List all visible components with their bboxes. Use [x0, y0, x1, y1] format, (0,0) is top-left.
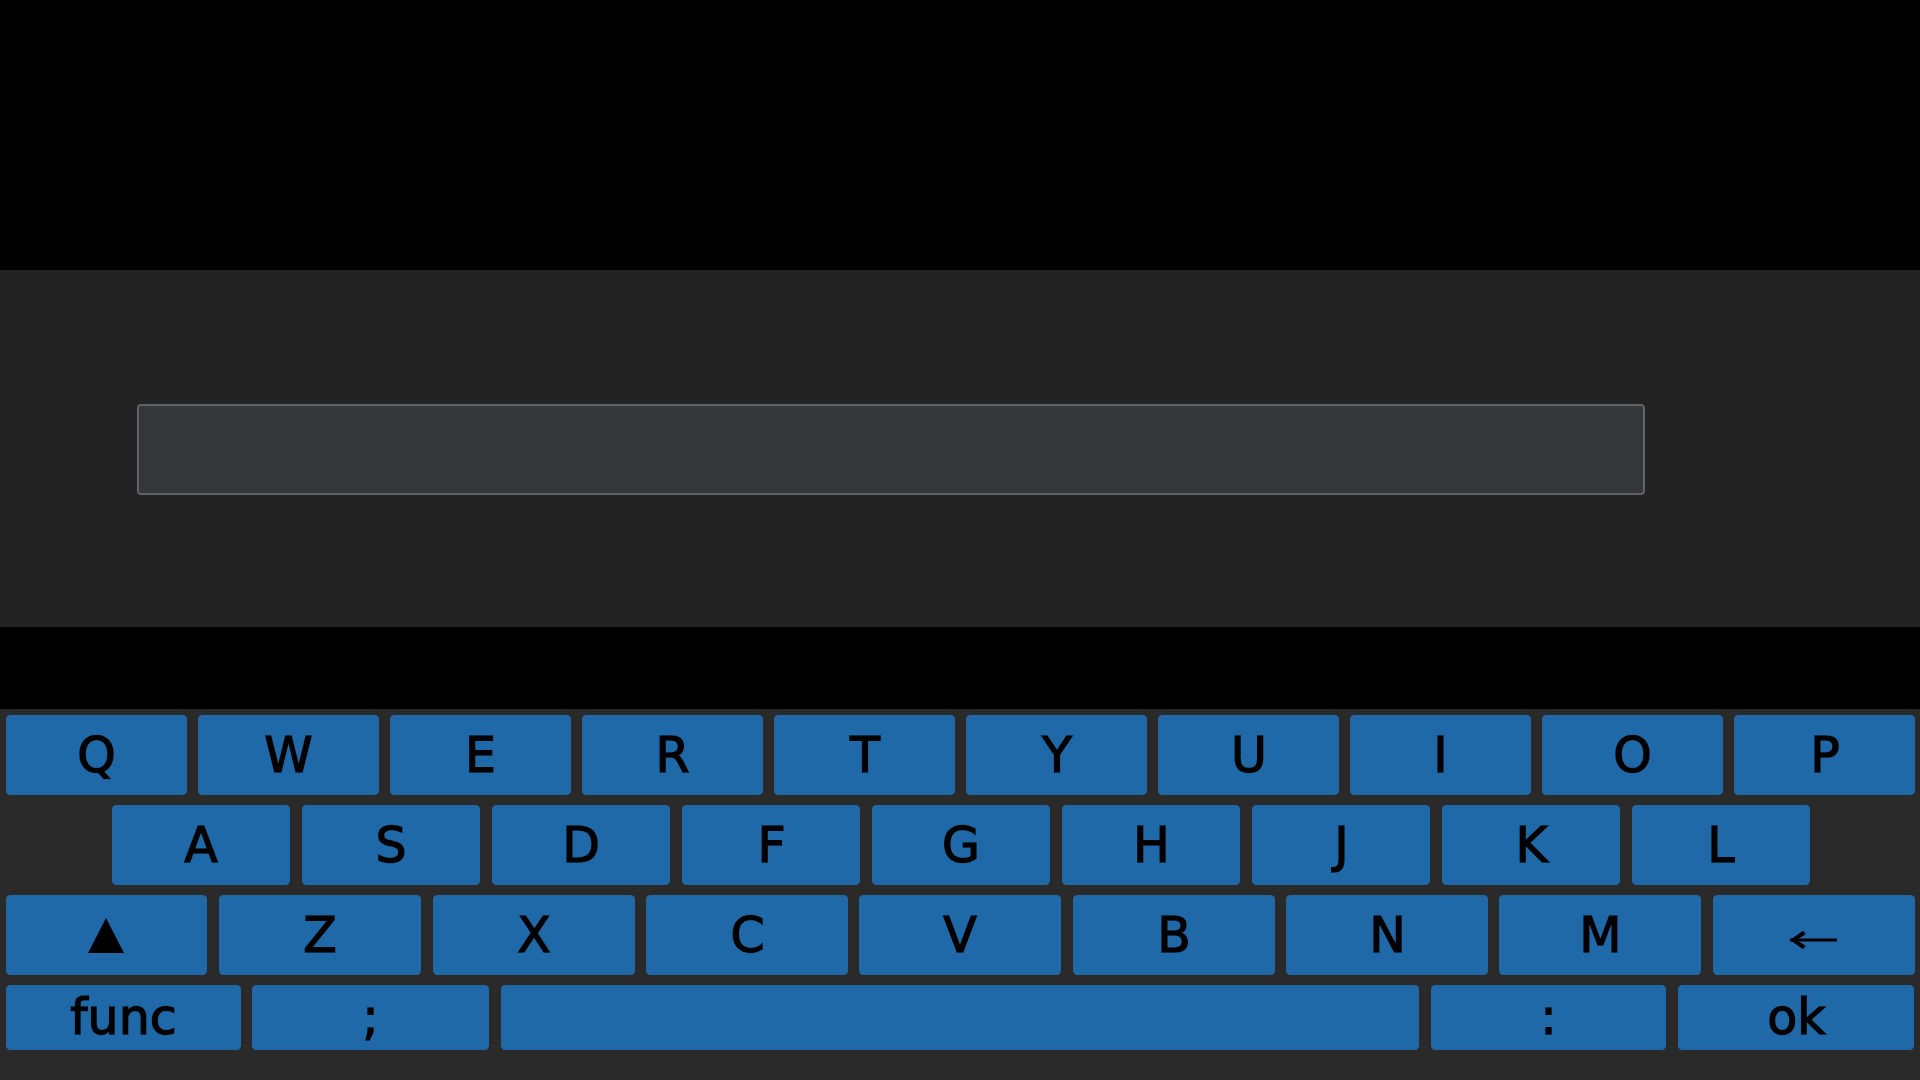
staticText: D [562, 817, 600, 874]
button[interactable]: ok [1678, 985, 1914, 1050]
button[interactable]: ; [252, 985, 489, 1050]
staticText: V [943, 907, 977, 964]
button[interactable]: W [198, 715, 379, 795]
staticText: I [1433, 727, 1448, 784]
button[interactable]: T [774, 715, 955, 795]
button[interactable]: I [1350, 715, 1531, 795]
staticText: R [655, 727, 690, 784]
button[interactable]: R [582, 715, 763, 795]
staticText: H [1133, 817, 1170, 874]
staticText: Y [1042, 727, 1072, 784]
staticText: N [1369, 907, 1406, 964]
button[interactable]: L [1632, 805, 1810, 885]
staticText: T [850, 727, 880, 784]
staticText: J [1334, 817, 1349, 874]
button[interactable]: G [872, 805, 1050, 885]
staticText: ; [362, 989, 379, 1046]
button[interactable]: : [1431, 985, 1666, 1050]
button[interactable]: S [302, 805, 480, 885]
button[interactable]: V [859, 895, 1061, 975]
staticText: Z [303, 907, 337, 964]
button[interactable]: Q [6, 715, 187, 795]
button[interactable]: X [433, 895, 635, 975]
button[interactable]: func [6, 985, 241, 1050]
button[interactable]: Backspace [1713, 895, 1915, 975]
button[interactable]: M [1499, 895, 1701, 975]
staticText: W [264, 727, 313, 784]
button[interactable]: C [646, 895, 848, 975]
staticText: : [1540, 989, 1557, 1046]
staticText: M [1579, 907, 1622, 964]
staticText: S [375, 817, 407, 874]
button[interactable] [137, 404, 1645, 495]
button[interactable]: B [1073, 895, 1275, 975]
staticText: A [184, 817, 218, 874]
staticText: B [1157, 907, 1191, 964]
button[interactable]: D [492, 805, 670, 885]
staticText: C [730, 907, 765, 964]
staticText: K [1515, 817, 1548, 874]
button[interactable]: E [390, 715, 571, 795]
button[interactable]: Shift [6, 895, 207, 975]
staticText: E [465, 727, 496, 784]
staticText: O [1613, 727, 1652, 784]
button[interactable]: H [1062, 805, 1240, 885]
button[interactable]: U [1158, 715, 1339, 795]
button[interactable]: A [112, 805, 290, 885]
button[interactable]: F [682, 805, 860, 885]
button[interactable]: J [1252, 805, 1430, 885]
staticText: Q [77, 727, 116, 784]
button[interactable]: K [1442, 805, 1620, 885]
staticText: L [1707, 817, 1735, 874]
button[interactable]: Y [966, 715, 1147, 795]
button[interactable]: P [1734, 715, 1915, 795]
staticText: X [517, 907, 551, 964]
staticText: P [1810, 727, 1840, 784]
staticText: ok [1767, 989, 1826, 1046]
staticText: G [942, 817, 980, 874]
button[interactable]: N [1286, 895, 1488, 975]
staticText: U [1231, 727, 1267, 784]
staticText: func [70, 989, 177, 1046]
button[interactable]: O [1542, 715, 1723, 795]
staticText: F [757, 817, 786, 874]
button[interactable]: Z [219, 895, 421, 975]
